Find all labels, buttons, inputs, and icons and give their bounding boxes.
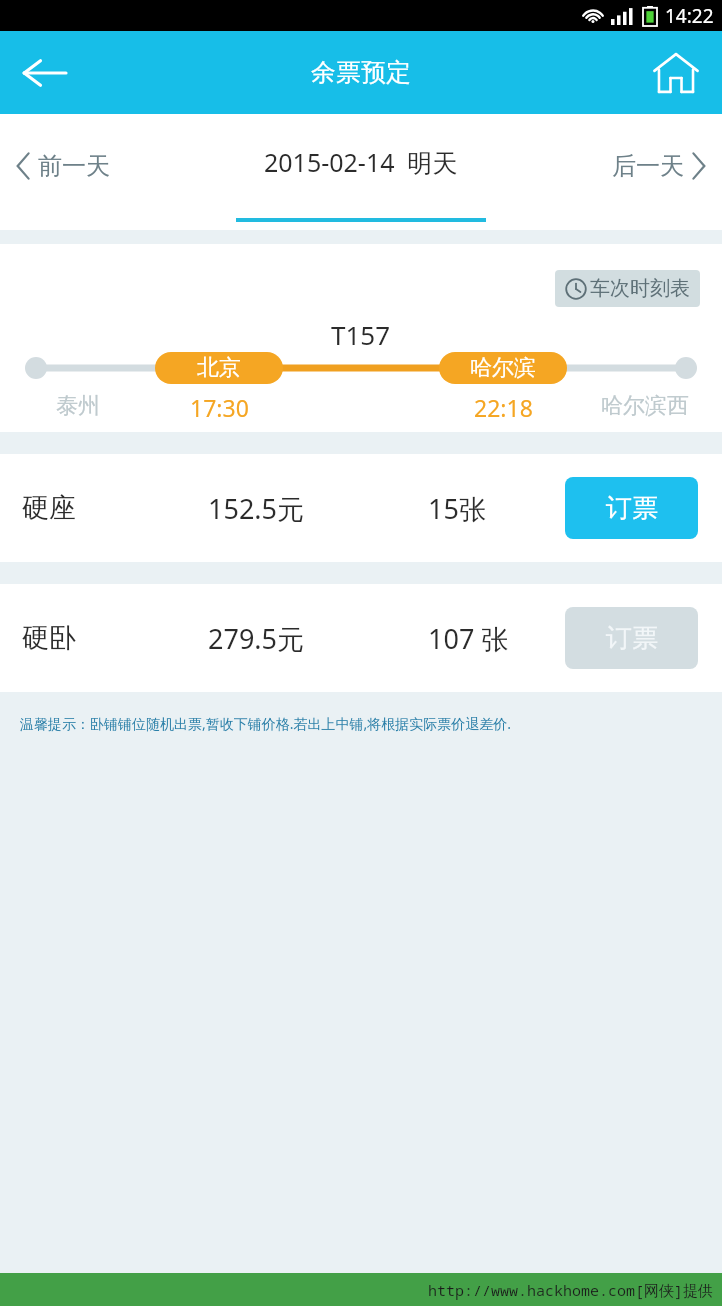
staticText: 硬卧 bbox=[22, 621, 76, 655]
button[interactable]: Back bbox=[0, 31, 88, 114]
staticText: 152.5元 bbox=[208, 490, 305, 527]
button[interactable]: 后一天 bbox=[612, 151, 706, 181]
button[interactable]: 订票 bbox=[565, 477, 698, 539]
staticText: 279.5元 bbox=[208, 620, 305, 657]
staticText: 前一天 bbox=[38, 151, 110, 181]
staticText: 15张 bbox=[428, 490, 486, 527]
staticText: 硬座 bbox=[22, 491, 76, 525]
staticText: T157 bbox=[331, 317, 391, 352]
button[interactable]: 2015-02-14 明天 bbox=[264, 145, 458, 179]
staticText: http://www.hackhome.com[网侠]提供 bbox=[428, 1280, 714, 1300]
button[interactable]: 订票 bbox=[565, 607, 698, 669]
staticText: 17:30 bbox=[190, 392, 249, 423]
staticText: 后一天 bbox=[612, 151, 684, 181]
staticText: 14:22 bbox=[665, 3, 714, 29]
staticText: 泰州 bbox=[56, 392, 100, 420]
staticText: 余票预定 bbox=[311, 57, 411, 88]
button[interactable]: Home bbox=[630, 31, 722, 114]
staticText: 哈尔滨 bbox=[470, 354, 536, 382]
staticText: 车次时刻表 bbox=[590, 276, 690, 301]
staticText: 订票 bbox=[606, 492, 658, 525]
staticText: 北京 bbox=[197, 354, 241, 382]
staticText: 22:18 bbox=[474, 392, 533, 423]
button[interactable]: 前一天 bbox=[16, 151, 110, 181]
staticText: 哈尔滨西 bbox=[601, 392, 689, 420]
button[interactable]: 车次时刻表 bbox=[555, 270, 700, 307]
staticText: 温馨提示：卧铺铺位随机出票,暂收下铺价格.若出上中铺,将根据实际票价退差价. bbox=[20, 714, 512, 733]
staticText: 订票 bbox=[606, 622, 658, 655]
staticText: 107 张 bbox=[428, 620, 509, 657]
